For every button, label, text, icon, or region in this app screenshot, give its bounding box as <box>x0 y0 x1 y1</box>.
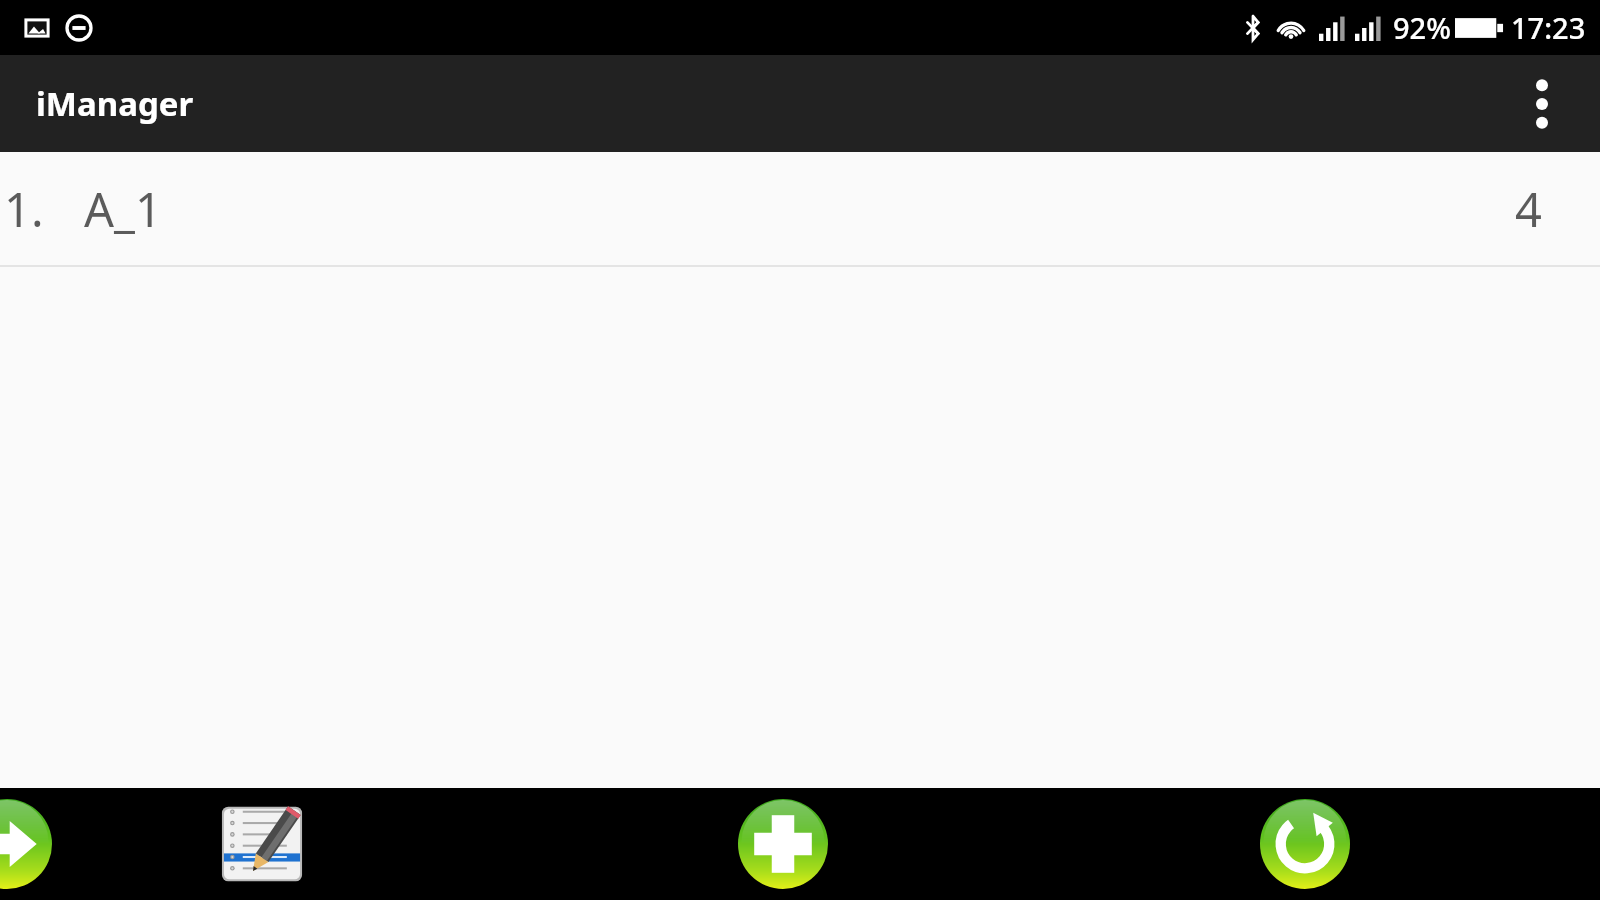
button[interactable]: More options <box>1502 64 1582 144</box>
staticText: 92% <box>1393 8 1451 47</box>
staticText: A_1 <box>84 177 162 241</box>
button[interactable]: Refresh <box>1260 799 1350 889</box>
button[interactable]: 1. <box>0 152 1600 267</box>
staticText: 1. <box>4 177 44 241</box>
button[interactable]: Add <box>738 799 828 889</box>
button[interactable]: Edit list <box>217 799 307 889</box>
staticText: iManager <box>36 81 194 126</box>
staticText: 4 <box>1515 177 1542 241</box>
button[interactable]: Go forward <box>0 799 52 889</box>
staticText: 17:23 <box>1511 8 1586 47</box>
